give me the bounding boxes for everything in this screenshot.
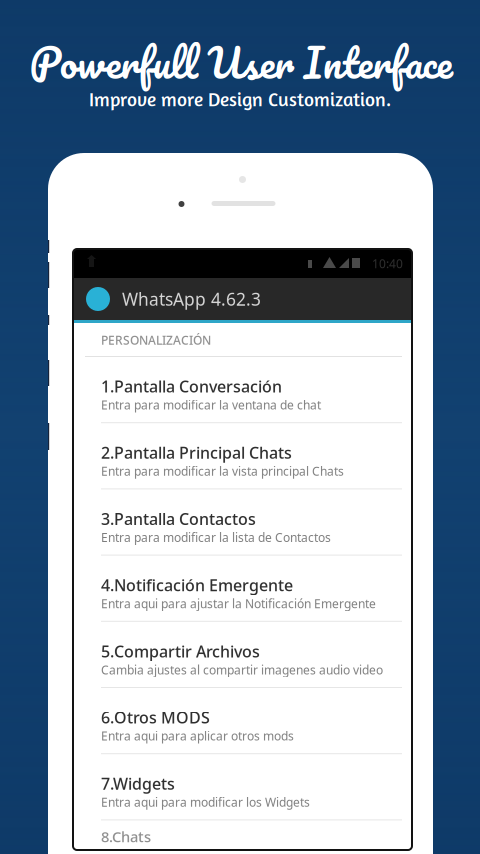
staticText: 2.Pantalla Principal Chats	[101, 442, 292, 463]
button[interactable]: 2.Pantalla Principal Chats	[73, 423, 412, 489]
button[interactable]: 3.Pantalla Contactos	[73, 489, 412, 556]
staticText: Entra para modificar la ventana de chat	[101, 397, 321, 413]
staticText: Powerfull User Interface	[29, 27, 452, 97]
staticText: 10:40	[372, 255, 403, 271]
staticText: 6.Otros MODS	[101, 707, 210, 728]
staticText: Improve more Design Customization.	[89, 87, 391, 111]
button[interactable]: 1.Pantalla Conversación	[73, 357, 412, 423]
staticText: Entra aqui para ajustar la Notificación …	[101, 596, 376, 611]
staticText: Entra aqui para aplicar otros mods	[101, 728, 294, 744]
button[interactable]: 4.Notificación Emergente	[73, 556, 412, 622]
staticText: 4.Notificación Emergente	[101, 574, 293, 596]
staticText: Entra para modificar la lista de Contact…	[101, 529, 331, 545]
staticText: PERSONALIZACIÓN	[101, 332, 211, 348]
staticText: WhatsApp 4.62.3	[122, 287, 261, 310]
staticText: 5.Compartir Archivos	[101, 641, 260, 662]
staticText: Cambia ajustes al compartir imagenes aud…	[101, 662, 383, 678]
button[interactable]: 5.Compartir Archivos	[73, 622, 412, 688]
button[interactable]: 6.Otros MODS	[73, 688, 412, 754]
button[interactable]: 7.Widgets	[73, 754, 412, 820]
staticText: 8.Chats	[101, 827, 151, 846]
staticText: 3.Pantalla Contactos	[101, 508, 256, 529]
staticText: 7.Widgets	[101, 773, 175, 794]
staticText: 1.Pantalla Conversación	[101, 376, 282, 397]
staticText: Entra para modificar la vista principal …	[101, 463, 344, 479]
staticText: Entra aqui para modificar los Widgets	[101, 794, 310, 810]
